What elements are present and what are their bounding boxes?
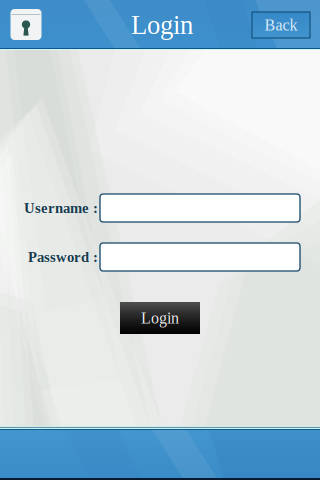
button[interactable]: Login [120, 302, 200, 334]
staticText: Login [131, 10, 193, 40]
staticText: Password : [28, 249, 98, 265]
button[interactable]: App icon [10, 9, 41, 40]
staticText: Back [264, 16, 297, 34]
staticText: Username : [24, 200, 98, 216]
staticText: Login [141, 309, 179, 327]
button[interactable]: Back [252, 12, 310, 38]
